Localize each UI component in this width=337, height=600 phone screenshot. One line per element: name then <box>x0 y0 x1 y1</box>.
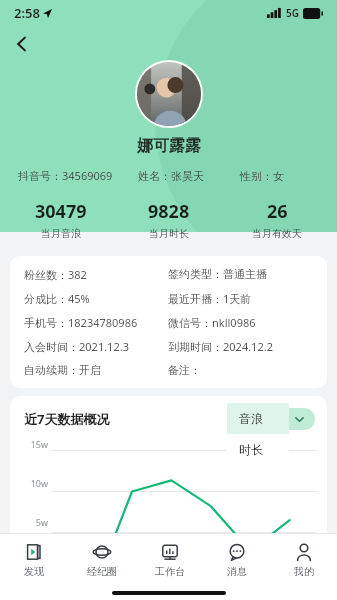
staticText: 分成比：45% <box>24 291 168 306</box>
button[interactable]: 26 <box>223 199 331 240</box>
staticText: 近7天数据概况 <box>24 410 110 428</box>
staticText: 微信号：nkll0986 <box>168 315 313 330</box>
staticText: 消息 <box>227 565 247 578</box>
button[interactable]: 经纪圈 <box>68 534 136 586</box>
staticText: 工作台 <box>155 565 185 578</box>
staticText: 当月音浪 <box>41 227 81 240</box>
staticText: 时长 <box>239 442 263 457</box>
staticText: 1w <box>10 550 48 562</box>
staticText: 5w <box>10 516 48 528</box>
staticText: 签约类型：普通主播 <box>168 267 313 281</box>
staticText: 入会时间：2021.12.3 <box>24 339 168 354</box>
button[interactable]: 音浪 <box>256 408 315 430</box>
staticText: 9828 <box>148 199 190 224</box>
button[interactable]: Back <box>6 28 38 60</box>
button[interactable]: 音浪 <box>227 403 289 434</box>
button[interactable]: 发现 <box>0 534 68 586</box>
staticText: 30479 <box>35 199 87 224</box>
staticText: 到期时间：2024.12.2 <box>168 339 313 354</box>
staticText: 姓名：张昊天 <box>138 169 240 183</box>
staticText: 自动续期：开启 <box>24 363 168 377</box>
button[interactable]: 9828 <box>115 199 223 240</box>
staticText: 当月时长 <box>149 227 189 240</box>
staticText: 当月有效天 <box>252 227 302 240</box>
staticText: 5G <box>286 6 299 20</box>
staticText: 我的 <box>294 565 314 578</box>
staticText: 娜可露露 <box>137 136 201 156</box>
staticText: 性别：女 <box>240 169 319 183</box>
staticText: 粉丝数：382 <box>24 267 168 282</box>
button[interactable]: 消息 <box>203 534 270 586</box>
staticText: 2:58 <box>14 4 40 22</box>
staticText: 备注： <box>168 363 313 377</box>
button[interactable]: 我的 <box>270 534 337 586</box>
staticText: 10w <box>10 477 48 489</box>
staticText: 发现 <box>24 565 44 578</box>
staticText: 经纪圈 <box>87 565 117 578</box>
staticText: 最近开播：1天前 <box>168 291 313 306</box>
staticText: 音浪 <box>239 411 263 426</box>
staticText: 26 <box>267 199 288 224</box>
button[interactable]: 工作台 <box>136 534 203 586</box>
staticText: 手机号：18234780986 <box>24 315 168 330</box>
staticText: 15w <box>10 438 48 450</box>
staticText: 抖音号：34569069 <box>18 168 138 183</box>
button[interactable]: 时长 <box>227 434 289 465</box>
button[interactable]: 30479 <box>6 199 115 240</box>
